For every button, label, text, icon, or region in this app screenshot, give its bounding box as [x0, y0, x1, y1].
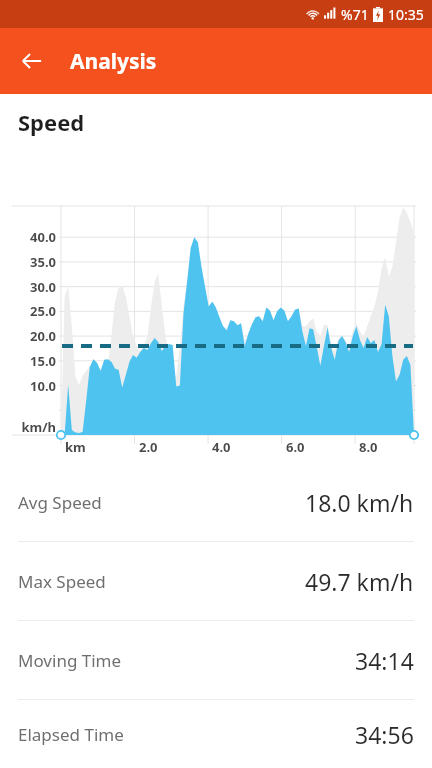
- staticText: 34:14: [355, 645, 414, 676]
- staticText: 35.0: [0, 253, 56, 271]
- staticText: Max Speed: [18, 570, 106, 593]
- button[interactable]: Moving Time: [0, 621, 432, 699]
- staticText: %71: [341, 5, 369, 24]
- staticText: 8.0: [359, 438, 378, 456]
- staticText: 18.0 km/h: [305, 487, 414, 518]
- button[interactable]: Avg Speed: [0, 463, 432, 541]
- staticText: Avg Speed: [18, 491, 102, 514]
- staticText: Speed: [18, 107, 85, 137]
- button[interactable]: Elapsed Time: [0, 700, 432, 768]
- staticText: Moving Time: [18, 649, 122, 672]
- staticText: Analysis: [70, 47, 157, 76]
- staticText: Elapsed Time: [18, 723, 124, 746]
- staticText: 20.0: [0, 327, 56, 345]
- staticText: 30.0: [0, 278, 56, 296]
- staticText: 2.0: [139, 438, 158, 456]
- staticText: 10.0: [0, 377, 56, 395]
- staticText: 34:56: [355, 719, 414, 750]
- staticText: 40.0: [0, 228, 56, 246]
- staticText: 49.7 km/h: [305, 566, 414, 597]
- button[interactable]: Back: [8, 37, 56, 85]
- staticText: km: [65, 438, 86, 456]
- staticText: 6.0: [286, 438, 305, 456]
- staticText: 15.0: [0, 352, 56, 370]
- staticText: 25.0: [0, 302, 56, 320]
- button[interactable]: Max Speed: [0, 542, 432, 620]
- staticText: km/h: [0, 418, 56, 436]
- staticText: 4.0: [212, 438, 231, 456]
- staticText: 10:35: [388, 5, 424, 24]
